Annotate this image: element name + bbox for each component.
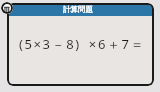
staticText: 計算問題 [63,5,93,14]
button[interactable]: 計算問題 [7,3,154,86]
button[interactable]: Abacus [1,2,13,14]
staticText: (5×3－8) ×6＋7＝ [19,35,146,53]
